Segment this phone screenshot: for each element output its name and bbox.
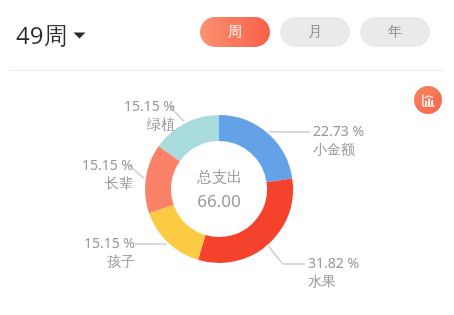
staticText: 绿植 [147,116,175,134]
staticText: 15.15 % [123,96,175,115]
staticText: 22.73 % [313,121,365,140]
staticText: 总支出 [197,168,242,187]
staticText: 周 [228,23,242,41]
button[interactable]: 月 [280,17,350,47]
button[interactable]: 49周 [14,16,88,53]
staticText: 15.15 % [81,155,133,174]
staticText: 长辈 [105,175,133,193]
staticText: 年 [388,23,402,41]
staticText: 15.15 % [83,233,135,252]
button[interactable]: 周 [200,17,270,47]
staticText: 月 [308,23,322,41]
button[interactable]: 年 [360,17,430,47]
staticText: 孩子 [107,253,135,271]
staticText: 水果 [308,273,336,291]
staticText: 49周 [16,18,68,51]
staticText: 小金额 [313,141,355,159]
staticText: 66.00 [197,189,241,212]
button[interactable]: Chart view [414,86,442,114]
staticText: 31.82 % [308,253,360,272]
